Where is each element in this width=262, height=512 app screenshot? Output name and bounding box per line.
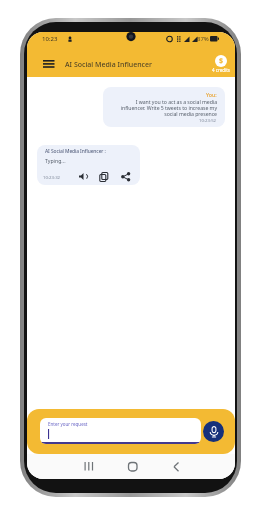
button[interactable]	[78, 172, 88, 182]
button[interactable]: Enter your request	[40, 418, 201, 444]
staticText: Typing...	[45, 157, 66, 164]
button[interactable]: $	[205, 55, 235, 73]
button[interactable]	[99, 172, 109, 182]
button[interactable]	[163, 454, 189, 479]
staticText: AI Social Media Influencer :	[45, 148, 106, 155]
button[interactable]	[76, 454, 102, 479]
staticText: I want you to act as a social media infl…	[120, 98, 217, 117]
button[interactable]	[121, 172, 131, 182]
staticText: 10:23:52	[199, 117, 217, 123]
staticText: $	[219, 56, 224, 66]
button[interactable]	[41, 58, 57, 70]
button[interactable]	[203, 421, 224, 442]
button[interactable]	[120, 454, 146, 479]
staticText: 10:23:32	[43, 174, 61, 180]
staticText: You:	[206, 91, 217, 98]
staticText: 4 credits	[212, 67, 230, 73]
staticText: 87%	[197, 35, 209, 43]
staticText: Enter your request	[48, 421, 88, 427]
staticText: AI Social Media Influencer	[65, 60, 153, 70]
staticText: 10:23	[42, 35, 58, 43]
